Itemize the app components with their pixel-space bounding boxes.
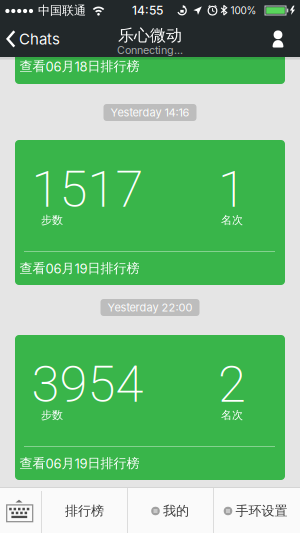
staticText: Yesterday 14:16 <box>110 106 189 119</box>
staticText: 步数 <box>41 408 63 422</box>
staticText: 名次 <box>221 408 243 422</box>
staticText: 我的 <box>163 503 189 519</box>
staticText: 2 <box>218 355 246 414</box>
staticText: 查看06月18日排行榜 <box>19 58 139 75</box>
staticText: 名次 <box>221 213 243 227</box>
staticText: Yesterday 22:00 <box>107 301 192 314</box>
staticText: 查看06月19日排行榜 <box>19 455 139 472</box>
staticText: Chats <box>19 30 60 48</box>
staticText: 1517 <box>31 160 143 219</box>
staticText: 14:55 <box>132 3 163 18</box>
staticText: 100% <box>230 4 256 17</box>
staticText: Connecting... <box>117 43 183 56</box>
staticText: 手环设置 <box>235 503 287 519</box>
staticText: 1 <box>218 160 246 219</box>
staticText: 查看06月19日排行榜 <box>19 260 139 277</box>
staticText: 步数 <box>41 213 63 227</box>
staticText: 3954 <box>31 355 143 414</box>
staticText: 中国联通 <box>38 3 86 18</box>
staticText: 乐心微动 <box>118 25 182 46</box>
staticText: 排行榜 <box>65 503 104 519</box>
